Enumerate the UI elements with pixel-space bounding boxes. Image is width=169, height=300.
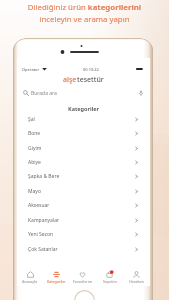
staticText: Operator — [22, 67, 40, 72]
button[interactable]: Mayo — [17, 184, 150, 198]
staticText: Hesabım — [129, 279, 144, 284]
staticText: Şal — [28, 116, 35, 123]
staticText: Kampanyalar — [28, 217, 60, 224]
button[interactable]: Favorilerim — [69, 268, 96, 286]
staticText: tesettür — [77, 75, 104, 84]
button[interactable]: Anasayfa — [17, 268, 43, 286]
button[interactable]: Kampanyalar — [17, 213, 150, 227]
staticText: Favorilerim — [73, 279, 93, 284]
button[interactable]: Abiye — [17, 155, 150, 169]
staticText: 00:10:22 — [83, 67, 99, 72]
staticText: Dilediğiniz ürün kategorilerini inceleyi… — [0, 2, 169, 24]
button[interactable]: Yeni Sezon — [17, 227, 150, 241]
staticText: Giyim — [28, 145, 42, 152]
staticText: Burada ara — [31, 90, 57, 97]
staticText: Sepetim — [103, 279, 117, 284]
staticText: Çok Satanlar — [28, 246, 58, 253]
button[interactable]: Giyim — [17, 141, 150, 155]
staticText: Anasayfa — [22, 279, 38, 284]
button[interactable]: Şal — [17, 112, 150, 126]
staticText: alşe — [63, 75, 77, 84]
button[interactable]: Aksesuar — [17, 198, 150, 212]
staticText: Mayo — [28, 188, 41, 195]
staticText: Kategoriler — [68, 105, 100, 112]
staticText: Abiye — [28, 159, 41, 166]
button[interactable]: Çok Satanlar — [17, 242, 150, 256]
staticText: Kategoriler — [47, 279, 66, 284]
button[interactable]: Şapka & Bere — [17, 169, 150, 183]
staticText: Aksesuar — [28, 202, 50, 209]
staticText: Yeni Sezon — [28, 231, 54, 238]
button[interactable]: Kategoriler — [43, 268, 69, 286]
button[interactable]: Burada ara — [17, 88, 150, 98]
staticText: Şapka & Bere — [28, 173, 60, 180]
button[interactable]: Sepetim — [96, 268, 123, 286]
button[interactable]: Bone — [17, 126, 150, 140]
staticText: Bone — [28, 130, 41, 137]
other: Sesli arama — [138, 90, 144, 96]
button[interactable]: Hesabım — [123, 268, 150, 286]
